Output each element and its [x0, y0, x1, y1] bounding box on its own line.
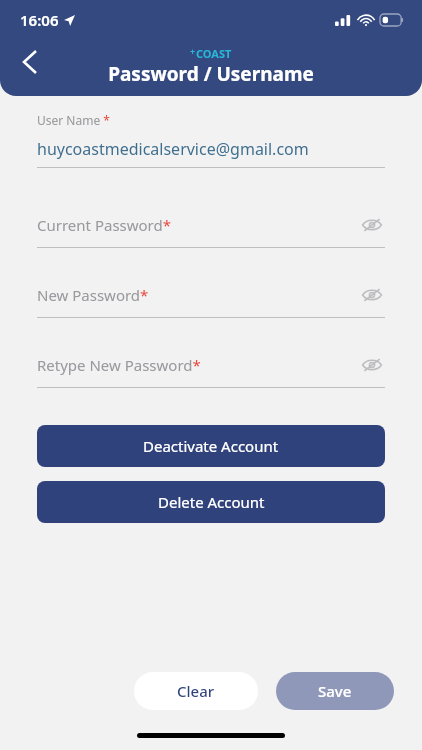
button[interactable]: Clear — [134, 672, 258, 710]
staticText: COAST — [196, 46, 232, 61]
staticText: Password / Username — [108, 61, 314, 87]
button[interactable]: Show password — [359, 282, 385, 308]
button[interactable]: Show password — [359, 352, 385, 378]
button[interactable]: Delete Account — [37, 481, 385, 523]
staticText: Retype New Password* — [37, 355, 201, 375]
staticText: huycoastmedicalservice@gmail.com — [37, 138, 309, 160]
staticText: Deactivate Account — [143, 436, 279, 456]
staticText: Current Password* — [37, 215, 171, 235]
staticText: Save — [318, 681, 352, 701]
staticText: Clear — [177, 681, 215, 701]
staticText: New Password* — [37, 285, 149, 305]
staticText: + — [190, 45, 196, 57]
staticText: Delete Account — [158, 492, 265, 512]
button[interactable]: Back — [8, 40, 52, 84]
staticText: 16:06 — [20, 10, 59, 30]
button[interactable]: Save — [276, 672, 394, 710]
staticText: User Name * — [37, 112, 110, 128]
button[interactable]: Show password — [359, 212, 385, 238]
button[interactable]: Deactivate Account — [37, 425, 385, 467]
